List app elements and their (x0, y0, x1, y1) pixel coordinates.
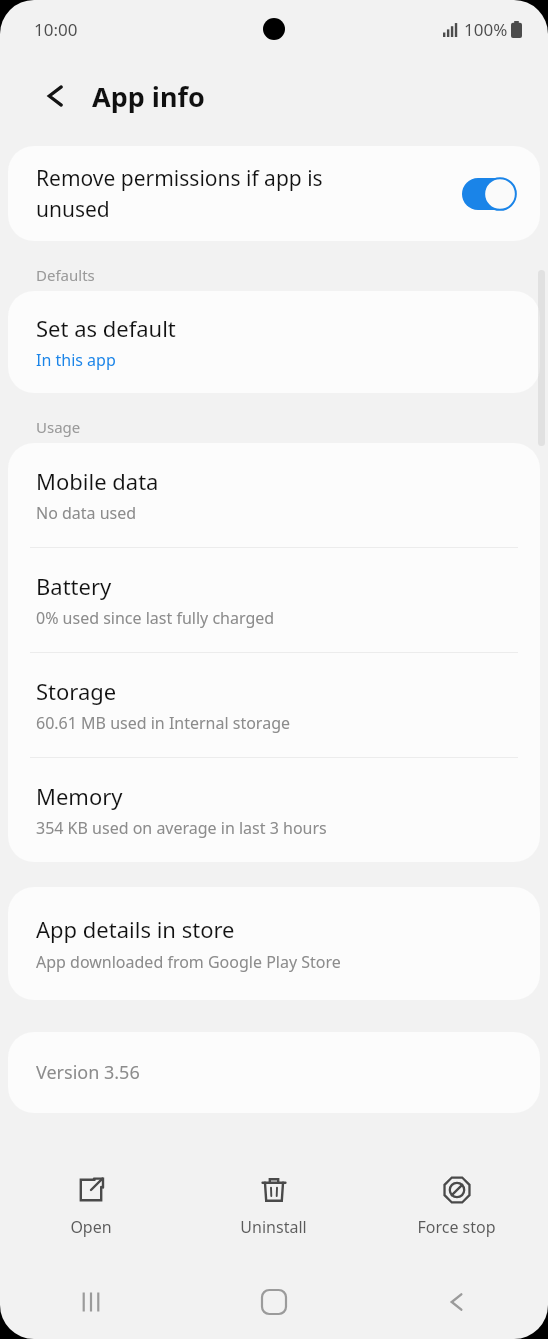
staticText: 100% (464, 18, 508, 41)
button[interactable]: Recent apps (0, 1265, 182, 1339)
staticText: Set as default (36, 313, 176, 343)
button[interactable]: Memory (8, 758, 540, 862)
button[interactable]: Back (365, 1265, 548, 1339)
staticText: App details in store (36, 914, 235, 944)
button[interactable]: Set as default (8, 291, 540, 393)
staticText: App downloaded from Google Play Store (36, 951, 341, 973)
staticText: Defaults (36, 265, 95, 285)
staticText: In this app (36, 349, 116, 371)
staticText: Force stop (417, 1216, 496, 1238)
button[interactable]: Force stop (365, 1163, 548, 1250)
staticText: Remove permissions if app is unused (36, 164, 452, 223)
staticText: App info (92, 78, 205, 115)
button[interactable]: Remove permissions if app is unused (8, 146, 540, 241)
button[interactable]: Mobile data (8, 443, 540, 547)
staticText: Usage (36, 417, 81, 437)
button[interactable]: Open (0, 1163, 182, 1250)
staticText: No data used (36, 502, 137, 524)
button[interactable]: App details in store (8, 887, 540, 1000)
staticText: 354 KB used on average in last 3 hours (36, 817, 327, 839)
staticText: 60.61 MB used in Internal storage (36, 712, 291, 734)
staticText: Uninstall (240, 1216, 307, 1238)
staticText: Memory (36, 781, 123, 811)
staticText: 10:00 (34, 18, 78, 41)
staticText: Battery (36, 571, 112, 601)
staticText: Mobile data (36, 466, 159, 496)
button[interactable]: Uninstall (182, 1163, 365, 1250)
button[interactable]: Home (182, 1265, 365, 1339)
staticText: Version 3.56 (36, 1060, 140, 1085)
button[interactable]: Back (34, 74, 78, 118)
staticText: Storage (36, 676, 117, 706)
staticText: Open (70, 1216, 112, 1238)
staticText: 0% used since last fully charged (36, 607, 275, 629)
button[interactable]: Battery (8, 548, 540, 652)
button[interactable]: Storage (8, 653, 540, 757)
